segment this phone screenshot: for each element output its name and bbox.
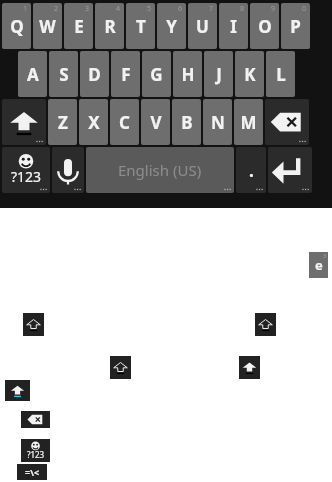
staticText: 2 — [54, 4, 59, 14]
staticText: K — [244, 63, 256, 86]
staticText: E — [74, 15, 84, 38]
button[interactable]: W — [33, 3, 62, 49]
staticText: G — [150, 63, 163, 86]
staticText: V — [150, 111, 162, 134]
button[interactable]: G — [142, 51, 171, 97]
button[interactable]: D — [80, 51, 109, 97]
staticText: W — [39, 15, 56, 38]
staticText: A — [27, 63, 39, 86]
staticText: 9 — [271, 4, 276, 14]
button[interactable]: J — [204, 51, 233, 97]
staticText: e — [315, 256, 323, 274]
button[interactable]: X — [79, 99, 108, 145]
staticText: 6 — [178, 4, 183, 14]
staticText: M — [240, 111, 257, 134]
staticText: 7 — [209, 4, 214, 14]
button[interactable]: Q — [2, 3, 31, 49]
button[interactable]: T — [126, 3, 155, 49]
button[interactable]: Backspace — [265, 99, 309, 145]
button[interactable]: Caps lock — [5, 380, 30, 401]
staticText: I — [230, 15, 237, 38]
staticText: . — [249, 159, 254, 182]
staticText: J — [216, 63, 222, 86]
button[interactable]: I — [219, 3, 248, 49]
button[interactable]: O — [250, 3, 279, 49]
button[interactable]: Shift — [255, 313, 276, 336]
button[interactable]: e — [309, 252, 328, 278]
staticText: English (US) — [118, 160, 202, 180]
button[interactable]: P — [281, 3, 310, 49]
button[interactable]: Enter — [268, 147, 312, 193]
button[interactable]: H — [173, 51, 202, 97]
staticText: B — [181, 111, 193, 134]
button[interactable]: Shift — [110, 356, 131, 379]
button[interactable]: R — [95, 3, 124, 49]
staticText: 5 — [147, 4, 152, 14]
button[interactable]: . — [236, 147, 266, 193]
staticText: T — [136, 15, 146, 38]
staticText: Y — [166, 15, 177, 38]
button[interactable]: M — [234, 99, 263, 145]
staticText: 1 — [23, 4, 28, 14]
button[interactable]: L — [266, 51, 295, 97]
staticText: P — [290, 15, 301, 38]
staticText: ?123 — [27, 449, 45, 460]
button[interactable]: Shift enabled — [239, 356, 260, 379]
button[interactable]: Voice input — [52, 147, 84, 193]
staticText: 3 — [85, 4, 90, 14]
button[interactable]: Y — [157, 3, 186, 49]
button[interactable]: C — [110, 99, 139, 145]
staticText: C — [119, 111, 130, 134]
staticText: O — [258, 15, 272, 38]
staticText: H — [181, 63, 195, 86]
button[interactable]: Shift — [23, 313, 44, 336]
button[interactable]: F — [111, 51, 140, 97]
staticText: ?123 — [11, 167, 42, 186]
staticText: 0 — [302, 4, 307, 14]
staticText: =\< — [25, 466, 40, 478]
button[interactable]: Symbols and emoji — [21, 439, 50, 462]
button[interactable]: Shift — [2, 99, 46, 145]
button[interactable]: K — [235, 51, 264, 97]
staticText: Z — [58, 111, 68, 134]
button[interactable]: ?123 — [2, 147, 50, 193]
staticText: D — [88, 63, 101, 86]
button[interactable]: S — [49, 51, 78, 97]
staticText: X — [88, 111, 100, 134]
staticText: N — [211, 111, 225, 134]
staticText: L — [276, 63, 286, 86]
button[interactable]: V — [141, 99, 170, 145]
staticText: 8 — [240, 4, 245, 14]
button[interactable]: E — [64, 3, 93, 49]
button[interactable]: U — [188, 3, 217, 49]
staticText: S — [59, 63, 69, 86]
staticText: Q — [10, 15, 24, 38]
staticText: U — [196, 15, 209, 38]
button[interactable]: Backspace — [21, 411, 50, 428]
staticText: 3 — [323, 252, 327, 260]
staticText: R — [104, 15, 116, 38]
staticText: 4 — [116, 4, 121, 14]
button[interactable]: English (US) — [86, 147, 234, 193]
button[interactable]: Z — [48, 99, 77, 145]
button[interactable]: N — [203, 99, 232, 145]
button[interactable]: A — [18, 51, 47, 97]
button[interactable]: =\< — [17, 464, 47, 480]
staticText: F — [121, 63, 131, 86]
button[interactable]: B — [172, 99, 201, 145]
